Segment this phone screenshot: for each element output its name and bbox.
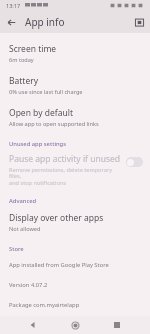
button[interactable]: Back	[24, 316, 42, 334]
staticText: Advanced	[9, 197, 37, 205]
staticText: Open by default	[9, 107, 73, 119]
button[interactable]: Back	[3, 14, 19, 30]
button[interactable]: Display over other apps	[0, 207, 150, 239]
button[interactable]: Pause app activity if unused	[0, 150, 150, 191]
staticText: App installed from Google Play Store	[9, 261, 109, 269]
staticText: Store	[9, 245, 24, 253]
staticText: Display over other apps	[9, 212, 104, 224]
staticText: 0% use since last full charge	[9, 88, 83, 96]
button[interactable]: Recent apps	[108, 316, 126, 334]
button[interactable]: Battery	[0, 70, 150, 102]
button[interactable]: Screen time	[0, 38, 150, 70]
staticText: 6m today	[9, 56, 34, 64]
button[interactable]: Open by default	[0, 102, 150, 134]
staticText: Not allowed	[9, 225, 41, 233]
button[interactable]: App installed from Google Play Store	[0, 255, 150, 275]
staticText: Version 4.07.2	[9, 281, 48, 289]
button[interactable]: Uninstall app	[131, 14, 147, 30]
staticText: Screen time	[9, 43, 57, 55]
button[interactable]: Version 4.07.2	[0, 275, 150, 295]
staticText: Package com.myairtelapp	[9, 301, 80, 309]
button[interactable]: Package com.myairtelapp	[0, 295, 150, 315]
button[interactable]: Pause app activity if unused toggle	[126, 157, 143, 167]
staticText: Battery	[9, 75, 39, 87]
button[interactable]: Home	[66, 316, 84, 334]
staticText: Unused app settings	[9, 140, 67, 148]
staticText: App info	[25, 15, 65, 29]
staticText: Pause app activity if unused	[9, 153, 121, 165]
staticText: Remove permissions, delete temporary fil…	[9, 166, 122, 187]
staticText: Allow app to open supported links	[9, 120, 99, 128]
staticText: 13:17	[6, 2, 21, 9]
